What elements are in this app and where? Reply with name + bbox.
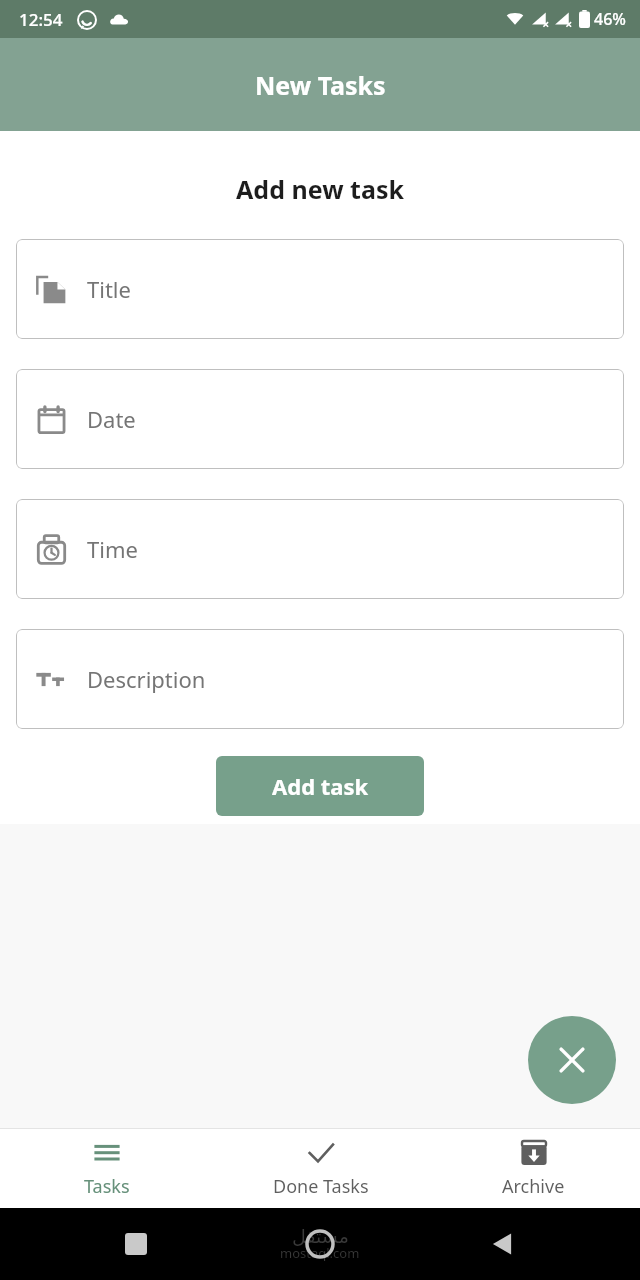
staticText: Date — [87, 404, 136, 434]
staticText: Archive — [502, 1174, 565, 1199]
staticText: 46% — [594, 8, 626, 30]
staticText: Add task — [272, 771, 369, 801]
staticText: New Tasks — [255, 68, 386, 102]
staticText: مستقل — [292, 1225, 349, 1247]
staticText: Done Tasks — [273, 1174, 369, 1199]
staticText: mostaql.com — [280, 1244, 360, 1262]
button[interactable]: Date — [16, 369, 624, 469]
button[interactable]: Done Tasks — [214, 1130, 427, 1207]
button[interactable]: Description — [16, 629, 624, 729]
staticText: Tasks — [84, 1174, 130, 1199]
staticText: Title — [87, 274, 131, 304]
button[interactable]: Back — [489, 1231, 515, 1257]
button[interactable]: Archive — [427, 1130, 640, 1207]
staticText: Add new task — [0, 172, 640, 206]
staticText: Time — [87, 534, 138, 564]
button[interactable]: Tasks — [0, 1130, 213, 1207]
button[interactable]: Recents — [125, 1233, 147, 1255]
button[interactable]: Close — [528, 1016, 616, 1104]
button[interactable]: Title — [16, 239, 624, 339]
button[interactable]: Time — [16, 499, 624, 599]
staticText: 12:54 — [19, 8, 63, 31]
staticText: Description — [87, 664, 206, 694]
button[interactable]: Add task — [216, 756, 424, 816]
button[interactable]: Home — [305, 1229, 335, 1259]
